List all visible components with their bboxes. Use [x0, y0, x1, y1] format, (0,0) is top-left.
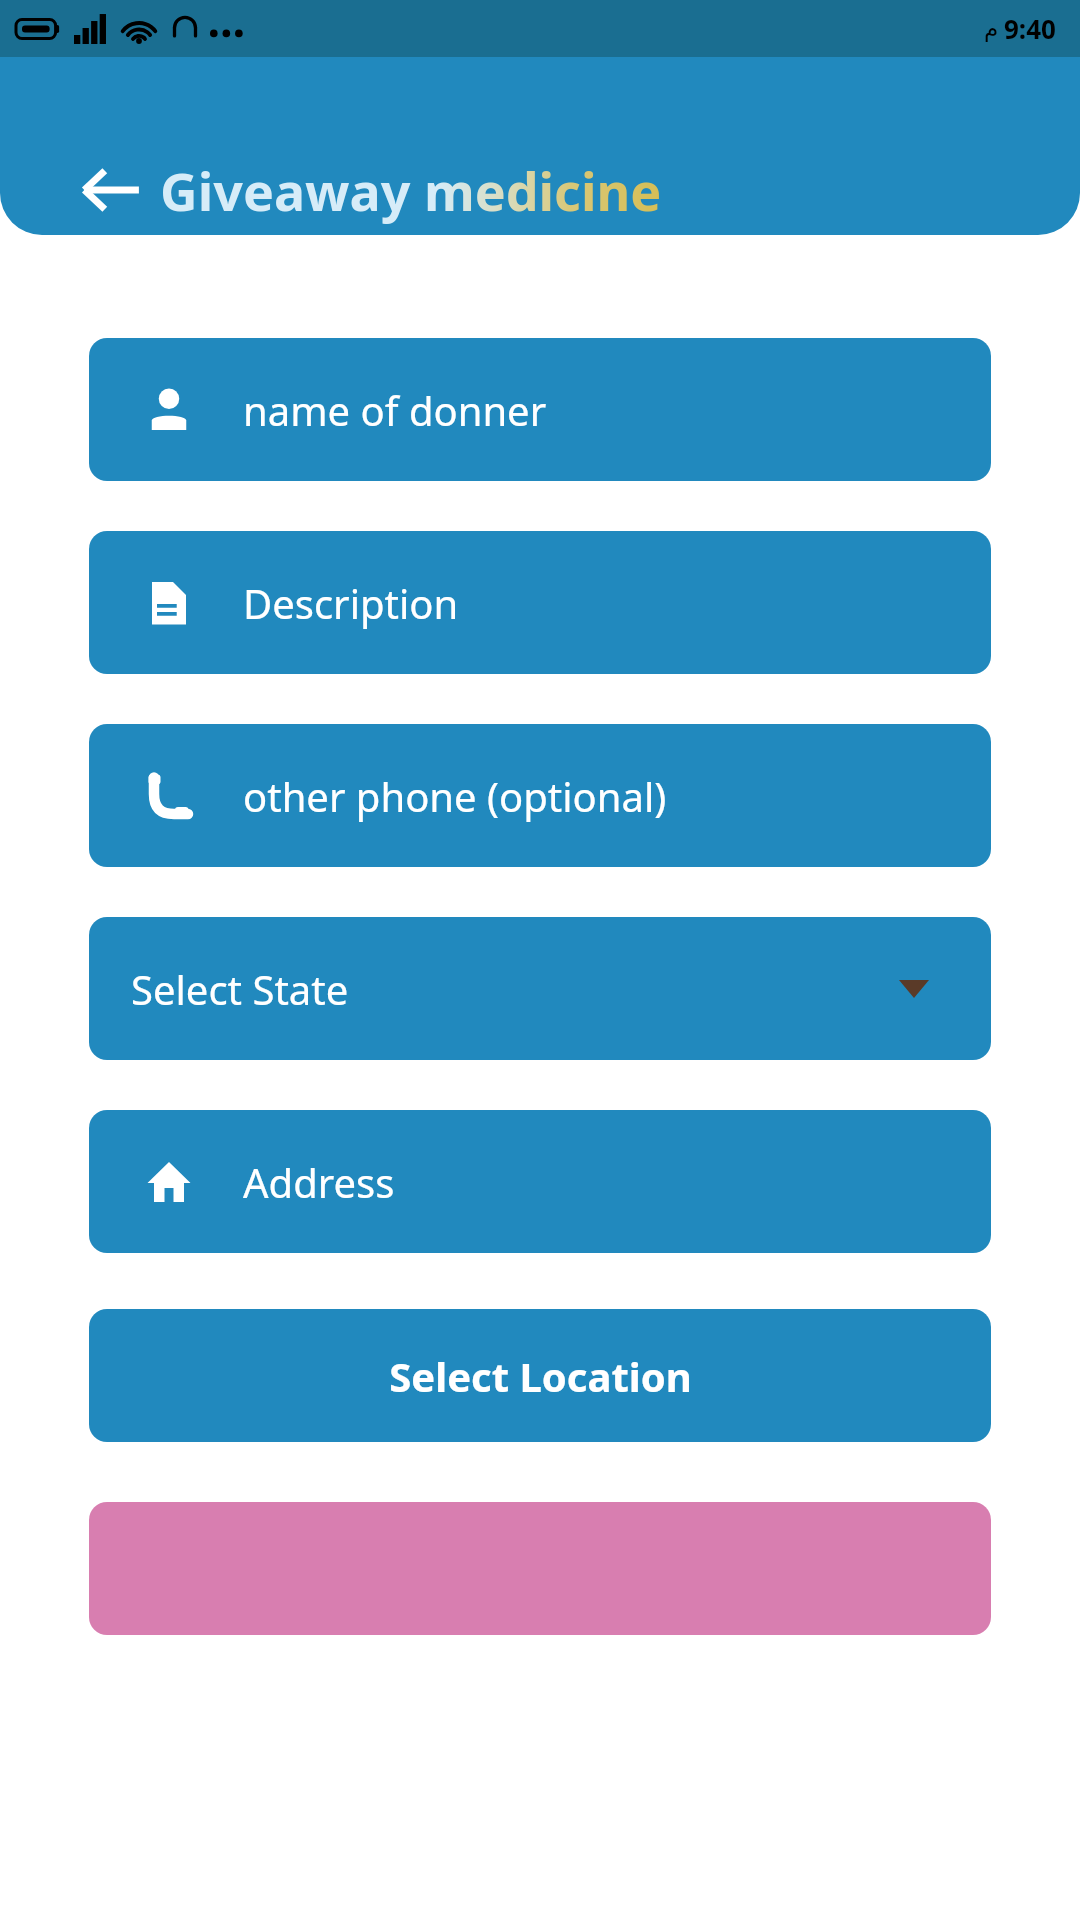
staticText: Address — [243, 1155, 395, 1209]
button[interactable]: name of donner — [89, 338, 991, 481]
staticText: other phone (optional) — [243, 769, 667, 823]
button[interactable]: Back — [72, 151, 150, 229]
staticText: Select State — [131, 962, 349, 1016]
staticText: Select Location — [389, 1349, 692, 1403]
button[interactable] — [89, 1502, 991, 1635]
button[interactable]: Select State — [89, 917, 991, 1060]
staticText: Giveaway medicine — [160, 155, 662, 226]
staticText: name of donner — [243, 383, 547, 437]
staticText: 9:40 — [1004, 11, 1056, 46]
button[interactable]: Address — [89, 1110, 991, 1253]
button[interactable]: Select Location — [89, 1309, 991, 1442]
staticText: م — [984, 15, 999, 42]
staticText: Description — [243, 576, 459, 630]
button[interactable]: other phone (optional) — [89, 724, 991, 867]
button[interactable]: Description — [89, 531, 991, 674]
